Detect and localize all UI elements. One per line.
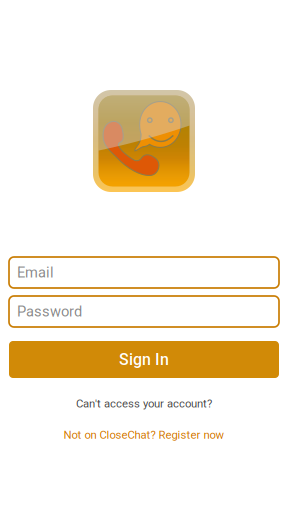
staticText: Sign In <box>119 350 169 369</box>
staticText: Can't access your account? <box>76 397 212 410</box>
staticText: Not on CloseChat? Register now <box>63 428 224 442</box>
button[interactable]: Can't access your account? <box>76 397 212 410</box>
button[interactable]: Password <box>9 296 279 327</box>
staticText: Email <box>17 264 54 281</box>
button[interactable]: Email <box>9 257 279 288</box>
button[interactable]: Sign In <box>9 341 279 378</box>
staticText: Password <box>17 303 82 320</box>
button[interactable]: Not on CloseChat? Register now <box>63 428 224 442</box>
